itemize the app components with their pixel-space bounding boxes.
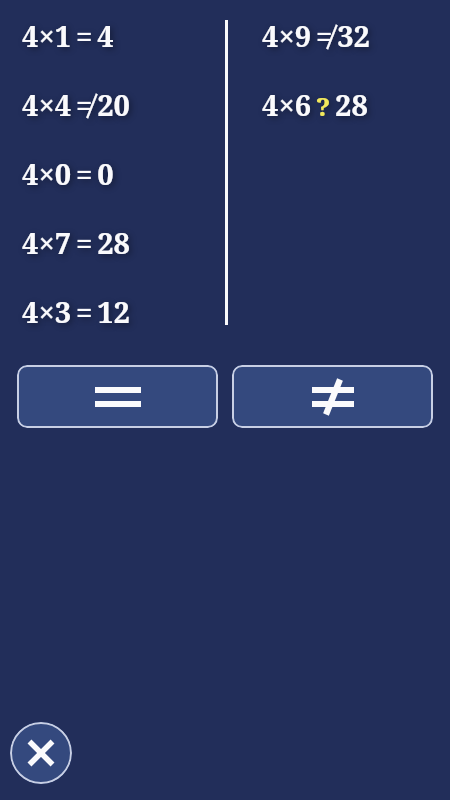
staticText: 4×3 = 12 bbox=[22, 292, 130, 331]
staticText: 4×0 = 0 bbox=[22, 154, 114, 193]
button[interactable]: Equals bbox=[17, 365, 218, 428]
staticText: 4×6 ? 28 bbox=[262, 85, 368, 124]
staticText: 4×4 ≠ 20 bbox=[22, 85, 130, 124]
staticText: 4×9 ≠ 32 bbox=[262, 16, 370, 55]
button[interactable]: Close bbox=[10, 722, 72, 784]
staticText: 4×1 = 4 bbox=[22, 16, 114, 55]
button[interactable]: Not equals bbox=[232, 365, 433, 428]
staticText: 4×7 = 28 bbox=[22, 223, 130, 262]
